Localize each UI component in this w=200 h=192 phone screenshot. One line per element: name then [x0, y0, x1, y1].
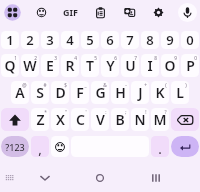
button[interactable]: Recents: [142, 164, 170, 192]
button[interactable]: .: [151, 136, 169, 157]
staticText: R: [65, 56, 75, 75]
staticText: T: [86, 56, 94, 75]
staticText: G: [95, 83, 106, 102]
button[interactable]: Keyboard: [0, 164, 24, 192]
button[interactable]: Voice input: [175, 0, 200, 25]
button[interactable]: Emoji: [29, 0, 54, 25]
staticText: B: [115, 110, 125, 129]
button[interactable]: O: [161, 54, 179, 77]
staticText: 6: [106, 31, 114, 49]
staticText: (: [165, 82, 167, 89]
staticText: @: [22, 82, 27, 89]
button[interactable]: Back: [31, 164, 59, 192]
button[interactable]: L: [171, 81, 189, 104]
staticText: $: [64, 82, 67, 89]
button[interactable]: Apps: [0, 0, 25, 25]
staticText: X: [56, 110, 65, 129]
button[interactable]: Clipboard: [88, 0, 113, 25]
staticText: 3: [46, 31, 54, 49]
staticText: ;: [125, 109, 127, 116]
staticText: Y: [106, 56, 115, 75]
button[interactable]: Shift: [1, 108, 29, 131]
button[interactable]: Enter: [171, 136, 199, 157]
button[interactable]: J: [131, 81, 149, 104]
button[interactable]: C: [71, 108, 89, 131]
staticText: H: [115, 83, 126, 102]
button[interactable]: Emoji: [51, 136, 69, 157]
staticText: ": [65, 109, 67, 116]
button[interactable]: S: [31, 81, 49, 104]
button[interactable]: 1: [1, 31, 19, 49]
staticText: 0: [186, 31, 194, 49]
button[interactable]: A: [11, 81, 29, 104]
button[interactable]: Translate: [117, 0, 142, 25]
staticText: 3: [54, 55, 57, 62]
staticText: C: [76, 110, 85, 129]
staticText: S: [36, 83, 44, 102]
staticText: ): [185, 82, 187, 89]
button[interactable]: 5: [81, 31, 99, 49]
button[interactable]: I: [141, 54, 159, 77]
staticText: M: [153, 110, 167, 129]
staticText: _: [84, 82, 87, 89]
button[interactable]: E: [41, 54, 59, 77]
staticText: U: [125, 56, 136, 75]
staticText: W: [23, 56, 37, 75]
button[interactable]: Backspace: [171, 108, 199, 131]
button[interactable]: 3: [41, 31, 59, 49]
staticText: 7: [126, 31, 134, 49]
button[interactable]: D: [51, 81, 69, 104]
button[interactable]: Z: [31, 108, 49, 131]
staticText: V: [96, 110, 105, 129]
staticText: 6: [114, 55, 117, 62]
staticText: 8: [154, 55, 157, 62]
button[interactable]: 6: [101, 31, 119, 49]
staticText: #: [43, 82, 47, 89]
button[interactable]: X: [51, 108, 69, 131]
button[interactable]: M: [151, 108, 169, 131]
staticText: K: [155, 83, 165, 102]
staticText: E: [46, 56, 54, 75]
button[interactable]: G: [91, 81, 109, 104]
staticText: 9: [166, 31, 174, 49]
button[interactable]: Q: [1, 54, 19, 77]
button[interactable]: 4: [61, 31, 79, 49]
button[interactable]: H: [111, 81, 129, 104]
button[interactable]: U: [121, 54, 139, 77]
button[interactable]: W: [21, 54, 39, 77]
button[interactable]: ?123: [1, 136, 29, 157]
button[interactable]: Y: [101, 54, 119, 77]
button[interactable]: K: [151, 81, 169, 104]
button[interactable]: 9: [161, 31, 179, 49]
button[interactable]: GIF: [58, 0, 83, 25]
button[interactable]: 7: [121, 31, 139, 49]
staticText: 4: [74, 55, 77, 62]
staticText: 1: [14, 55, 17, 62]
staticText: A: [15, 83, 25, 102]
button[interactable]: 2: [21, 31, 39, 49]
button[interactable]: B: [111, 108, 129, 131]
staticText: !: [145, 109, 147, 116]
staticText: 7: [134, 55, 137, 62]
staticText: +: [144, 82, 147, 89]
staticText: P: [186, 56, 195, 75]
staticText: ,: [38, 140, 42, 157]
button[interactable]: 0: [181, 31, 199, 49]
button[interactable]: Home: [86, 164, 114, 192]
button[interactable]: V: [91, 108, 109, 131]
button[interactable]: 8: [141, 31, 159, 49]
button[interactable]: P: [181, 54, 199, 77]
button[interactable]: T: [81, 54, 99, 77]
button[interactable]: N: [131, 108, 149, 131]
button[interactable]: F: [71, 81, 89, 104]
button[interactable]: Settings: [146, 0, 171, 25]
staticText: 4: [66, 31, 74, 49]
staticText: -: [125, 82, 127, 89]
staticText: L: [176, 83, 184, 102]
staticText: 5: [86, 31, 94, 49]
staticText: ?123: [5, 141, 25, 153]
staticText: 8: [146, 31, 154, 49]
button[interactable]: ,: [31, 136, 49, 157]
button[interactable]: R: [61, 54, 79, 77]
